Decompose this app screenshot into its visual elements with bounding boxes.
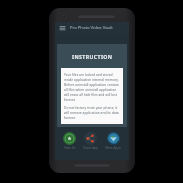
- staticText: Share App: [83, 146, 98, 150]
- button[interactable]: Share App: [82, 131, 99, 151]
- staticText: Rate Us: [64, 146, 76, 150]
- button[interactable]: Rate Us: [62, 131, 77, 151]
- staticText: Do not factory reset your phone, it will…: [64, 105, 120, 120]
- staticText: Pro Photo Video Vault: [70, 25, 113, 31]
- button[interactable]: Open navigation menu: [58, 24, 67, 33]
- button[interactable]: More Apps: [104, 131, 122, 151]
- staticText: Your files are locked and stored inside …: [64, 72, 120, 102]
- staticText: INSTRUCTION: [72, 53, 113, 60]
- staticText: More Apps: [105, 146, 121, 150]
